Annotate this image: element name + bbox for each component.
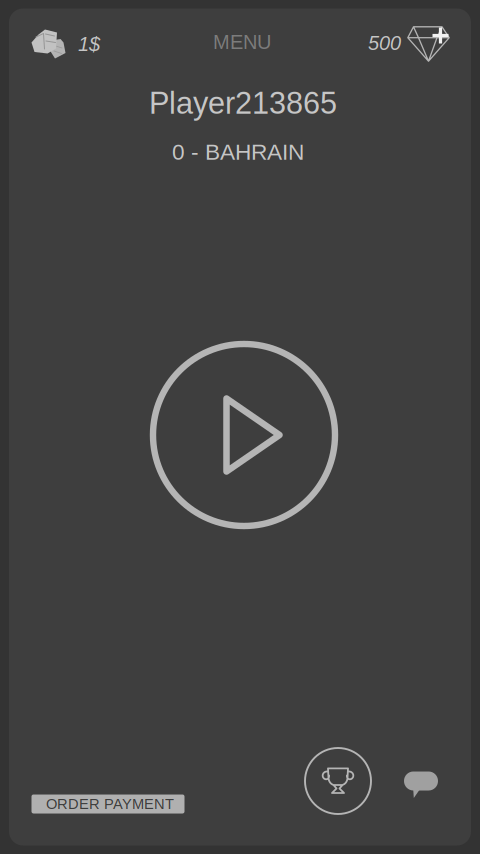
staticText: 0 - BAHRAIN bbox=[172, 139, 304, 165]
button[interactable]: ORDER PAYMENT bbox=[31, 794, 184, 813]
button[interactable]: MENU bbox=[199, 23, 285, 61]
staticText: MENU bbox=[213, 31, 271, 53]
button[interactable]: 500 bbox=[363, 20, 455, 64]
staticText: Player213865 bbox=[149, 86, 337, 120]
staticText: 1$ bbox=[78, 33, 100, 55]
button[interactable]: 1$ bbox=[24, 22, 106, 66]
staticText: 500 bbox=[368, 32, 401, 54]
button[interactable]: Achievements bbox=[305, 748, 371, 814]
button[interactable]: Chat bbox=[404, 771, 438, 798]
staticText: ORDER PAYMENT bbox=[46, 796, 174, 812]
button[interactable]: Play bbox=[150, 341, 338, 529]
